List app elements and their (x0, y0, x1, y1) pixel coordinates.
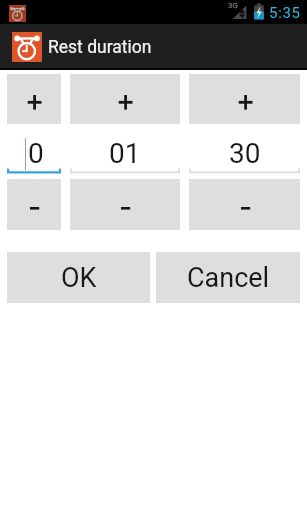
staticText: Rest duration (48, 37, 152, 58)
button[interactable]: App home (12, 32, 42, 62)
button[interactable]: 01 (70, 126, 180, 174)
button[interactable]: Decrease minutes (70, 179, 180, 230)
button[interactable]: 0 (7, 126, 61, 174)
staticText: 3G (228, 1, 238, 10)
button[interactable]: OK (7, 252, 150, 303)
staticText: 5:35 (269, 4, 301, 22)
staticText: Cancel (187, 262, 270, 294)
staticText: 0 (28, 137, 44, 170)
button[interactable]: Increase hours (7, 74, 61, 124)
button[interactable]: Decrease hours (7, 179, 61, 230)
button[interactable]: Increase minutes (70, 74, 180, 124)
button[interactable]: Cancel (156, 252, 300, 303)
button[interactable]: 30 (189, 126, 300, 174)
button[interactable]: Increase seconds (189, 74, 300, 124)
staticText: OK (61, 262, 97, 294)
button[interactable]: Decrease seconds (189, 179, 300, 230)
staticText: 30 (229, 137, 261, 170)
staticText: 01 (109, 137, 141, 170)
